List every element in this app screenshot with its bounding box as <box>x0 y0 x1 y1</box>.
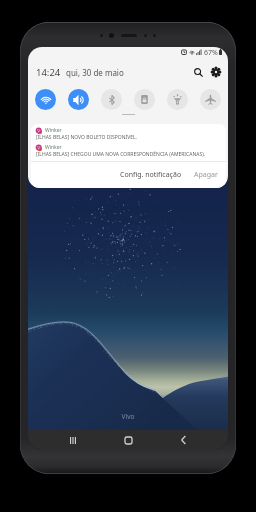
button[interactable]: Lanterna <box>167 89 188 110</box>
button[interactable]: Som <box>68 89 89 110</box>
button[interactable]: Winker <box>31 144 226 158</box>
staticText: qui, 30 de maio <box>66 67 124 78</box>
button[interactable]: Voltar <box>173 430 193 450</box>
staticText: Winker <box>45 127 62 134</box>
button[interactable]: Início <box>118 430 138 450</box>
staticText: 67% <box>204 48 218 56</box>
staticText: Vivo <box>28 412 228 421</box>
staticText: Config. notificação <box>120 170 182 180</box>
button[interactable]: Apagar <box>191 167 221 183</box>
button[interactable]: Winker <box>31 127 226 141</box>
button[interactable]: Recentes <box>63 430 83 450</box>
staticText: [ILHAS BELAS] CHEGOU UMA NOVA CORRESPOND… <box>36 151 205 158</box>
button[interactable]: Configurações <box>208 64 224 80</box>
button[interactable]: Modo avião <box>200 89 221 110</box>
button[interactable]: Bluetooth <box>101 89 122 110</box>
button[interactable]: Wi-Fi <box>35 89 56 110</box>
staticText: Winker <box>45 144 62 151</box>
staticText: [ILHAS BELAS] NOVO BOLETO DISPONÍVEL. <box>36 134 137 141</box>
button[interactable]: Não perturbe <box>134 89 155 110</box>
button[interactable]: Pesquisar <box>190 64 206 80</box>
staticText: 14:24 <box>36 66 61 79</box>
staticText: Apagar <box>194 170 218 180</box>
button[interactable]: Config. notificação <box>117 167 185 183</box>
